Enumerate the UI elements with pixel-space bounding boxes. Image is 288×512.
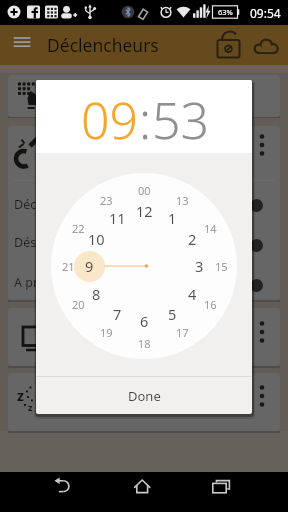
staticText: Déclencheurs [47,33,159,57]
staticText: 22 [72,221,85,236]
staticText: 6 [140,311,149,331]
staticText: 14 [204,221,217,236]
staticText: 11 [109,208,126,228]
staticText: Déclenchée quand [14,196,124,213]
button[interactable]: Done [36,377,252,414]
staticText: 17 [176,325,189,340]
button[interactable] [121,474,167,510]
staticText: 3 [195,256,204,276]
staticText: 2 [188,229,197,249]
staticText: 18 [138,336,151,351]
staticText: : [139,86,152,154]
staticText: z [17,386,24,405]
staticText: Done [128,387,161,405]
staticText: 13 [176,193,189,208]
button[interactable] [212,28,246,62]
staticText: Désactivée quand [14,234,119,251]
staticText: 4 [188,284,197,304]
staticText: 19 [100,325,113,340]
staticText: 09 [81,86,139,154]
button[interactable] [8,126,280,300]
button[interactable] [4,31,34,59]
button[interactable] [8,75,280,117]
staticText: 09:54 [250,5,281,21]
staticText: 8 [92,284,101,304]
button[interactable] [8,373,280,431]
staticText: 10 [88,229,105,249]
staticText: 5 [168,304,177,324]
button[interactable] [202,474,248,510]
staticText: z [28,401,33,413]
staticText: 16 [204,297,217,312]
button[interactable] [8,308,280,366]
staticText: 53 [152,86,210,154]
staticText: 21 [62,259,75,274]
staticText: A programmé [14,274,96,291]
staticText: 20 [72,297,85,312]
staticText: 12 [136,201,153,221]
staticText: 1 [168,208,177,228]
staticText: 00 [138,183,151,198]
staticText: 23 [100,193,113,208]
button[interactable] [40,474,86,510]
staticText: 7 [113,304,122,324]
staticText: 63% [218,7,233,17]
staticText: 9 [85,256,94,276]
button[interactable] [248,28,284,62]
staticText: 15 [215,259,228,274]
